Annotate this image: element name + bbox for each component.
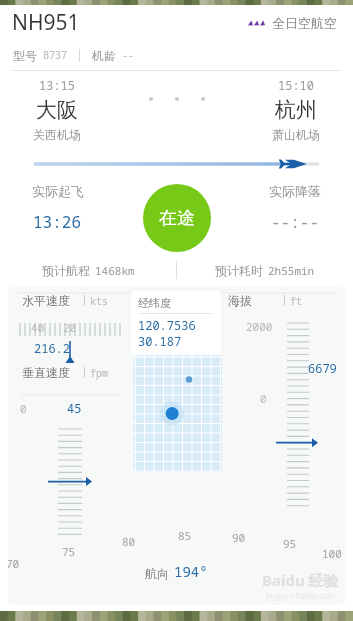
- staticText: 型号: [13, 48, 37, 63]
- other: ANA logo: [248, 18, 266, 28]
- button[interactable]: [133, 355, 222, 472]
- staticText: jingyan.baidu.com: [266, 590, 336, 601]
- staticText: 2000: [246, 319, 273, 334]
- staticText: 216.2: [34, 340, 71, 356]
- staticText: 194°: [174, 562, 208, 581]
- staticText: 航向: [145, 566, 169, 581]
- staticText: 6679: [308, 360, 337, 376]
- staticText: 预计航程: [42, 263, 90, 278]
- staticText: 垂直速度: [22, 365, 70, 380]
- staticText: 实际降落: [269, 183, 321, 199]
- staticText: 95: [283, 536, 297, 551]
- staticText: 80: [122, 534, 136, 549]
- staticText: 85: [178, 528, 192, 543]
- staticText: 机龄: [92, 48, 116, 63]
- staticText: 在途: [159, 207, 195, 230]
- staticText: 预计耗时: [215, 263, 263, 278]
- staticText: --:--: [271, 211, 320, 233]
- staticText: Baidu 经验: [262, 570, 339, 590]
- staticText: 大阪: [36, 97, 78, 123]
- staticText: 0: [260, 391, 267, 406]
- staticText: 经纬度: [138, 296, 171, 310]
- staticText: --: [122, 48, 134, 62]
- staticText: 13:15: [39, 77, 76, 93]
- staticText: 实际起飞: [32, 183, 84, 199]
- button[interactable]: 在途: [143, 184, 211, 252]
- staticText: 1468km: [95, 263, 135, 278]
- staticText: 13:26: [33, 211, 82, 233]
- staticText: 萧山机场: [272, 127, 320, 142]
- staticText: 45: [67, 400, 82, 416]
- staticText: 杭州: [275, 97, 317, 123]
- staticText: B737: [43, 48, 67, 62]
- staticText: 100: [322, 546, 342, 561]
- staticText: 0: [20, 401, 27, 416]
- staticText: 30.187: [138, 333, 182, 349]
- staticText: 20: [63, 320, 77, 335]
- staticText: 75: [62, 544, 76, 559]
- staticText: 关西机场: [33, 127, 81, 142]
- staticText: ft: [290, 294, 302, 308]
- staticText: 海拔: [228, 293, 252, 308]
- staticText: NH951: [12, 8, 80, 37]
- staticText: 水平速度: [22, 293, 70, 308]
- staticText: 15:10: [278, 77, 315, 93]
- staticText: 120.7536: [138, 317, 196, 333]
- staticText: kts: [90, 294, 108, 308]
- staticText: 70: [8, 556, 20, 571]
- staticText: 40: [31, 320, 45, 335]
- staticText: fpm: [90, 366, 108, 380]
- staticText: 90: [232, 530, 246, 545]
- staticText: 全日空航空: [272, 15, 337, 31]
- button[interactable]: 水平速度: [8, 287, 345, 605]
- staticText: 2h55min: [268, 263, 315, 278]
